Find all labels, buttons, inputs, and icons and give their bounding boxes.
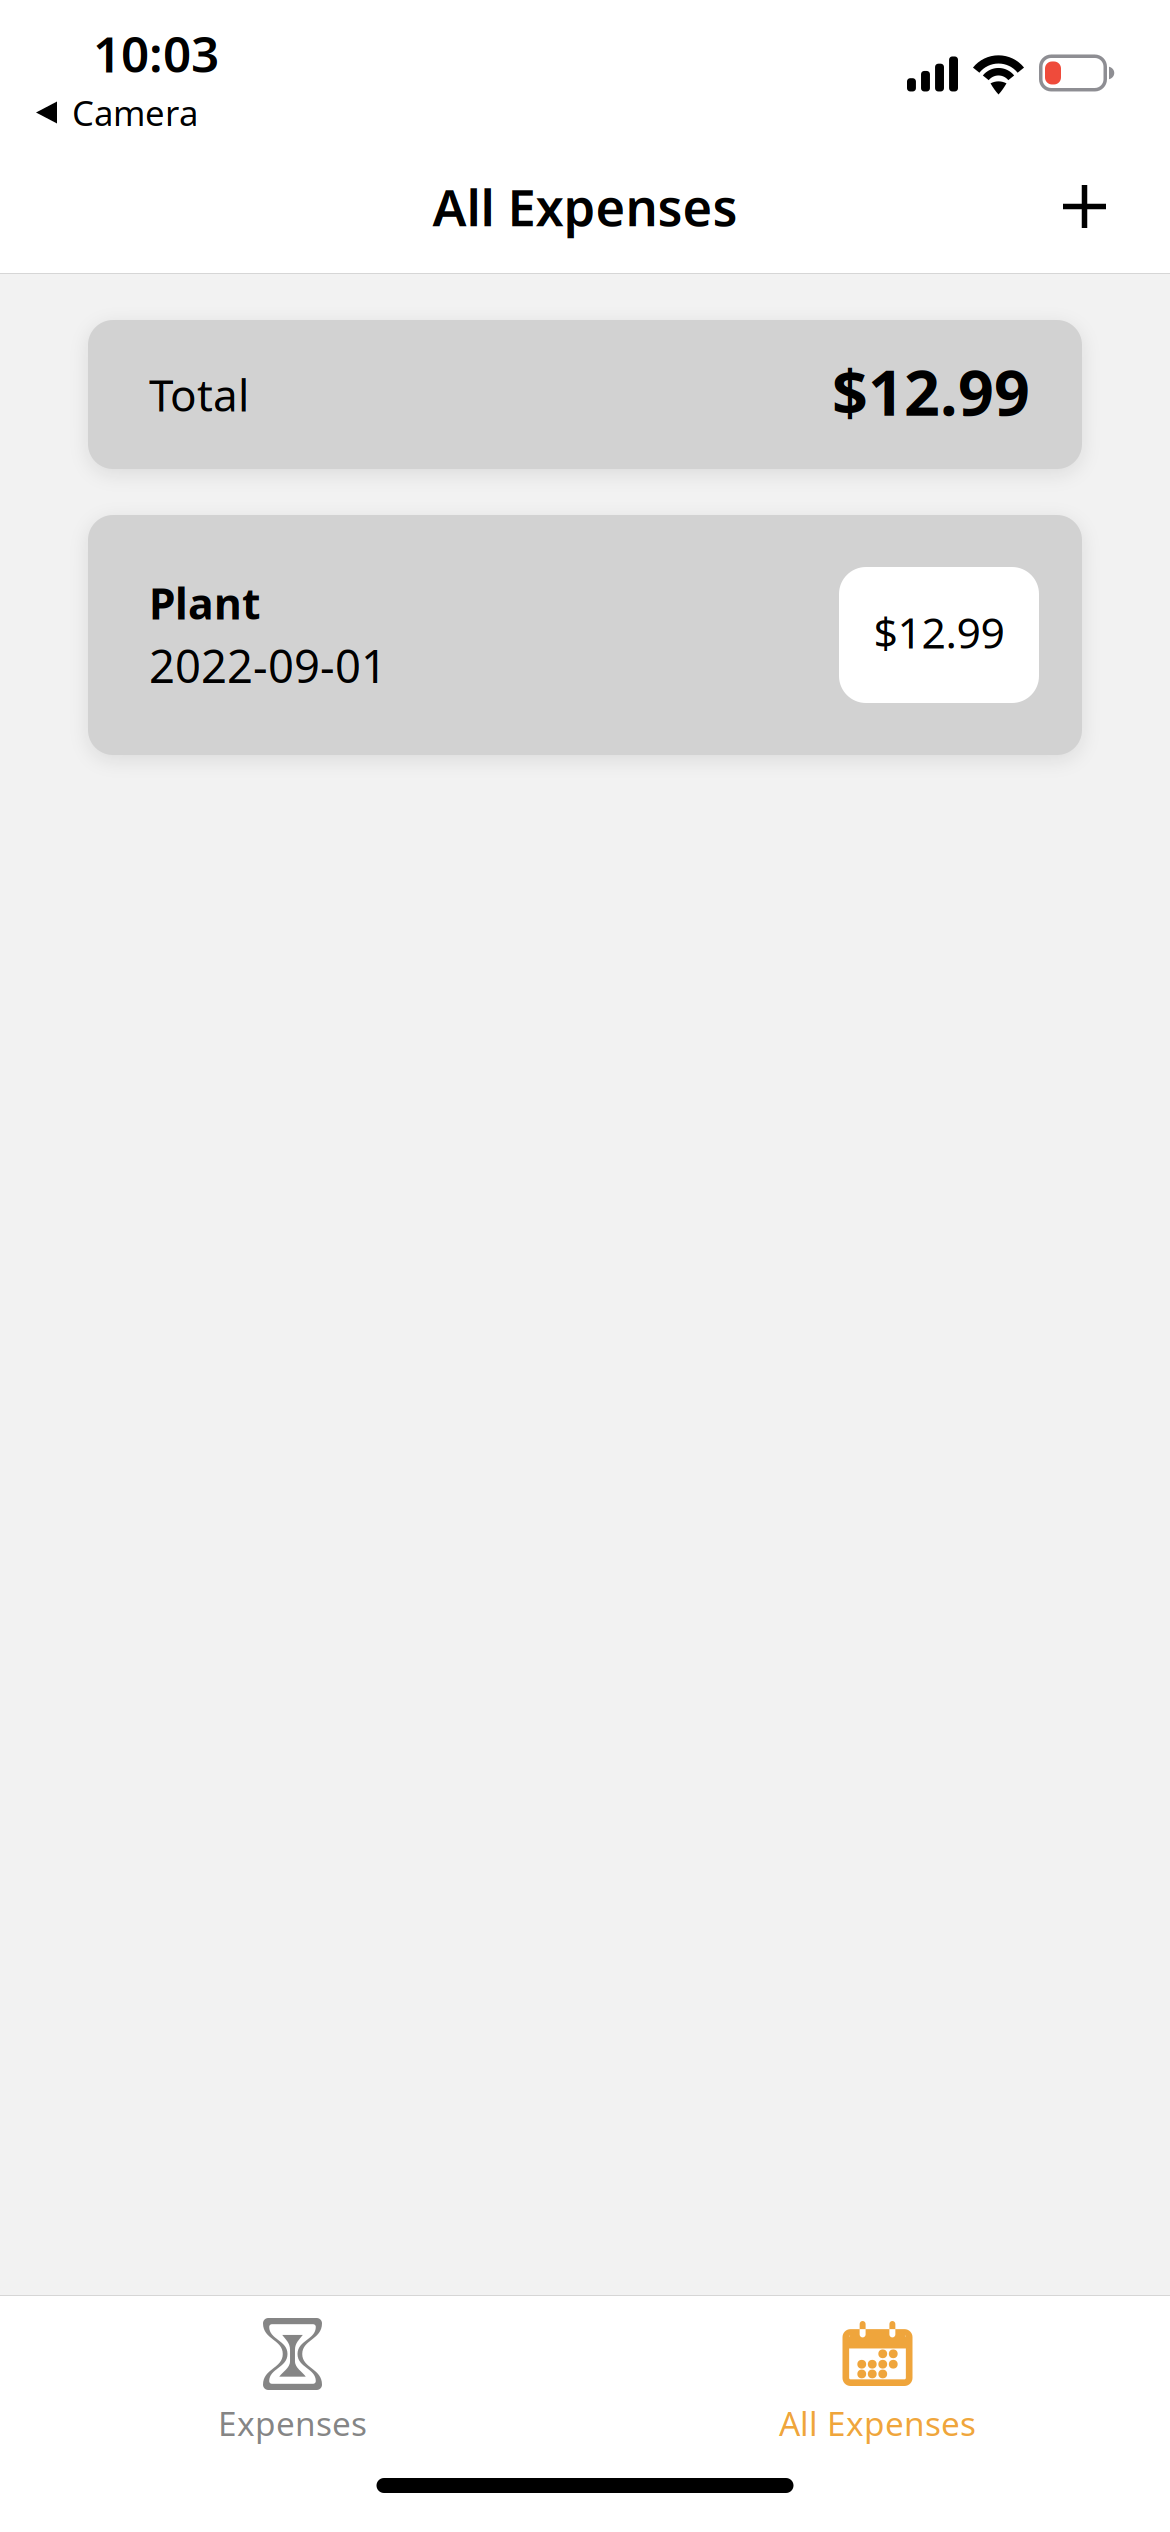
staticText: Camera (72, 89, 198, 135)
button[interactable]: Expenses (0, 2296, 585, 2445)
button[interactable]: Camera (0, 9, 198, 135)
staticText: $12.99 (832, 350, 1030, 433)
button[interactable]: Plant (88, 515, 1082, 755)
staticText: Total (149, 365, 249, 424)
staticText: All Expenses (779, 2401, 976, 2445)
staticText: $12.99 (873, 604, 1004, 660)
staticText: All Expenses (432, 173, 737, 240)
button[interactable]: Add expense (1027, 149, 1142, 264)
staticText: Plant (149, 575, 261, 631)
button[interactable]: All Expenses (585, 2296, 1170, 2445)
staticText: 2022-09-01 (149, 635, 387, 695)
staticText: 10:03 (93, 20, 219, 86)
staticText: Expenses (218, 2401, 367, 2445)
